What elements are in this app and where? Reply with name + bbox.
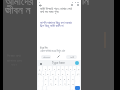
button[interactable]: Settings — [39, 62, 42, 65]
staticText: নি — [82, 0, 89, 7]
button[interactable]: Search — [70, 3, 74, 7]
button[interactable]: শ — [71, 76, 74, 81]
button[interactable]: Back — [38, 3, 42, 7]
staticText: গ — [67, 73, 69, 75]
staticText: ত — [66, 68, 68, 70]
staticText: ঘ — [49, 68, 51, 70]
staticText: র — [43, 73, 44, 75]
staticText: কথা সব সময় শুনব — [40, 9, 59, 13]
button[interactable]: দ — [43, 66, 47, 71]
button[interactable]: ঢ — [59, 81, 62, 86]
staticText: নিজের কথা জানাতে হবে — [7, 53, 22, 63]
staticText: ক — [47, 73, 49, 75]
staticText: চ — [54, 68, 55, 70]
button[interactable]: ত — [65, 66, 68, 71]
staticText: প — [74, 68, 76, 70]
button[interactable]: এ — [71, 71, 75, 76]
staticText: স — [45, 78, 47, 80]
button[interactable]: ঞ — [71, 81, 74, 86]
staticText: . — [72, 87, 73, 90]
button[interactable]: পোস্ট — [66, 55, 77, 59]
button[interactable]: ৃ — [49, 81, 53, 86]
button[interactable]: স — [44, 76, 48, 81]
staticText: হ — [62, 73, 64, 75]
button[interactable]: ক — [46, 71, 50, 76]
staticText: ণ — [45, 83, 47, 85]
button[interactable]: ষ — [59, 76, 62, 81]
button[interactable]: ন — [69, 66, 72, 71]
button[interactable]: ফ — [77, 66, 80, 71]
staticText: ও — [50, 78, 52, 80]
staticText: ফ — [78, 68, 80, 70]
staticText: পোস্ট — [70, 56, 74, 58]
staticText: ো — [38, 73, 41, 75]
staticText: শ — [72, 78, 74, 80]
staticText: আমি নিশ্চয়ই পড়ব তোমার লেখা — [40, 6, 72, 10]
staticText: ড — [62, 68, 64, 70]
button[interactable]: ব — [56, 71, 60, 76]
button[interactable]: গ — [66, 71, 70, 76]
button[interactable]: Voice input — [75, 61, 79, 65]
button[interactable]: ি — [76, 71, 80, 76]
button[interactable]: উ — [54, 76, 58, 81]
staticText: আমাদের জীবন ন — [5, 0, 34, 17]
staticText: ঢ — [60, 83, 61, 85]
staticText: ল — [52, 73, 54, 75]
button[interactable]: ড — [61, 66, 64, 71]
staticText: জ — [58, 68, 60, 70]
button[interactable]: ো — [38, 71, 41, 76]
button[interactable]: ভ — [67, 81, 70, 86]
button[interactable]: ঘ — [48, 66, 52, 71]
button[interactable]: ঙ — [38, 66, 42, 71]
staticText: এ — [72, 73, 74, 75]
button[interactable]: হ — [61, 71, 65, 76]
button[interactable]: র — [42, 71, 45, 76]
button[interactable]: চ — [53, 66, 56, 71]
button[interactable]: ও — [49, 76, 53, 81]
staticText: উ — [55, 78, 57, 80]
staticText: ঙ — [39, 68, 41, 70]
staticText: থ — [55, 83, 57, 85]
staticText: ছিল কিন্তু আমি জানি না — [40, 23, 64, 27]
button[interactable]: ় — [63, 81, 66, 86]
staticText: আপনি আমাকে কিছু বলা দরকার — [40, 20, 72, 24]
button[interactable]: য — [67, 76, 70, 81]
staticText: ি — [77, 73, 80, 75]
button[interactable]: Edit — [56, 54, 61, 59]
button[interactable]: ণ — [44, 81, 48, 86]
button[interactable]: ম — [63, 76, 66, 81]
button[interactable]: থ — [54, 81, 58, 86]
staticText: য — [68, 78, 70, 80]
staticText: ম — [64, 78, 66, 80]
staticText: ব — [58, 73, 59, 75]
staticText: ন — [70, 68, 72, 70]
button[interactable]: ক্যানসেল — [41, 55, 51, 59]
staticText: ভ — [68, 83, 70, 85]
staticText: ক্যানসেল — [43, 56, 50, 58]
staticText: ঞ — [72, 83, 74, 85]
staticText: উত্তর দিন — [40, 46, 48, 50]
button[interactable]: জ — [57, 66, 60, 71]
button[interactable]: More options — [76, 3, 80, 7]
staticText: ষ — [60, 78, 62, 80]
staticText: Type here — [52, 61, 65, 65]
staticText: এখানে আপনার মন্তব্য লিখুন এখন — [40, 49, 66, 52]
button[interactable]: ল — [51, 71, 55, 76]
button[interactable]: Send — [75, 86, 80, 90]
button[interactable]: প — [73, 66, 76, 71]
staticText: দ — [45, 68, 46, 70]
